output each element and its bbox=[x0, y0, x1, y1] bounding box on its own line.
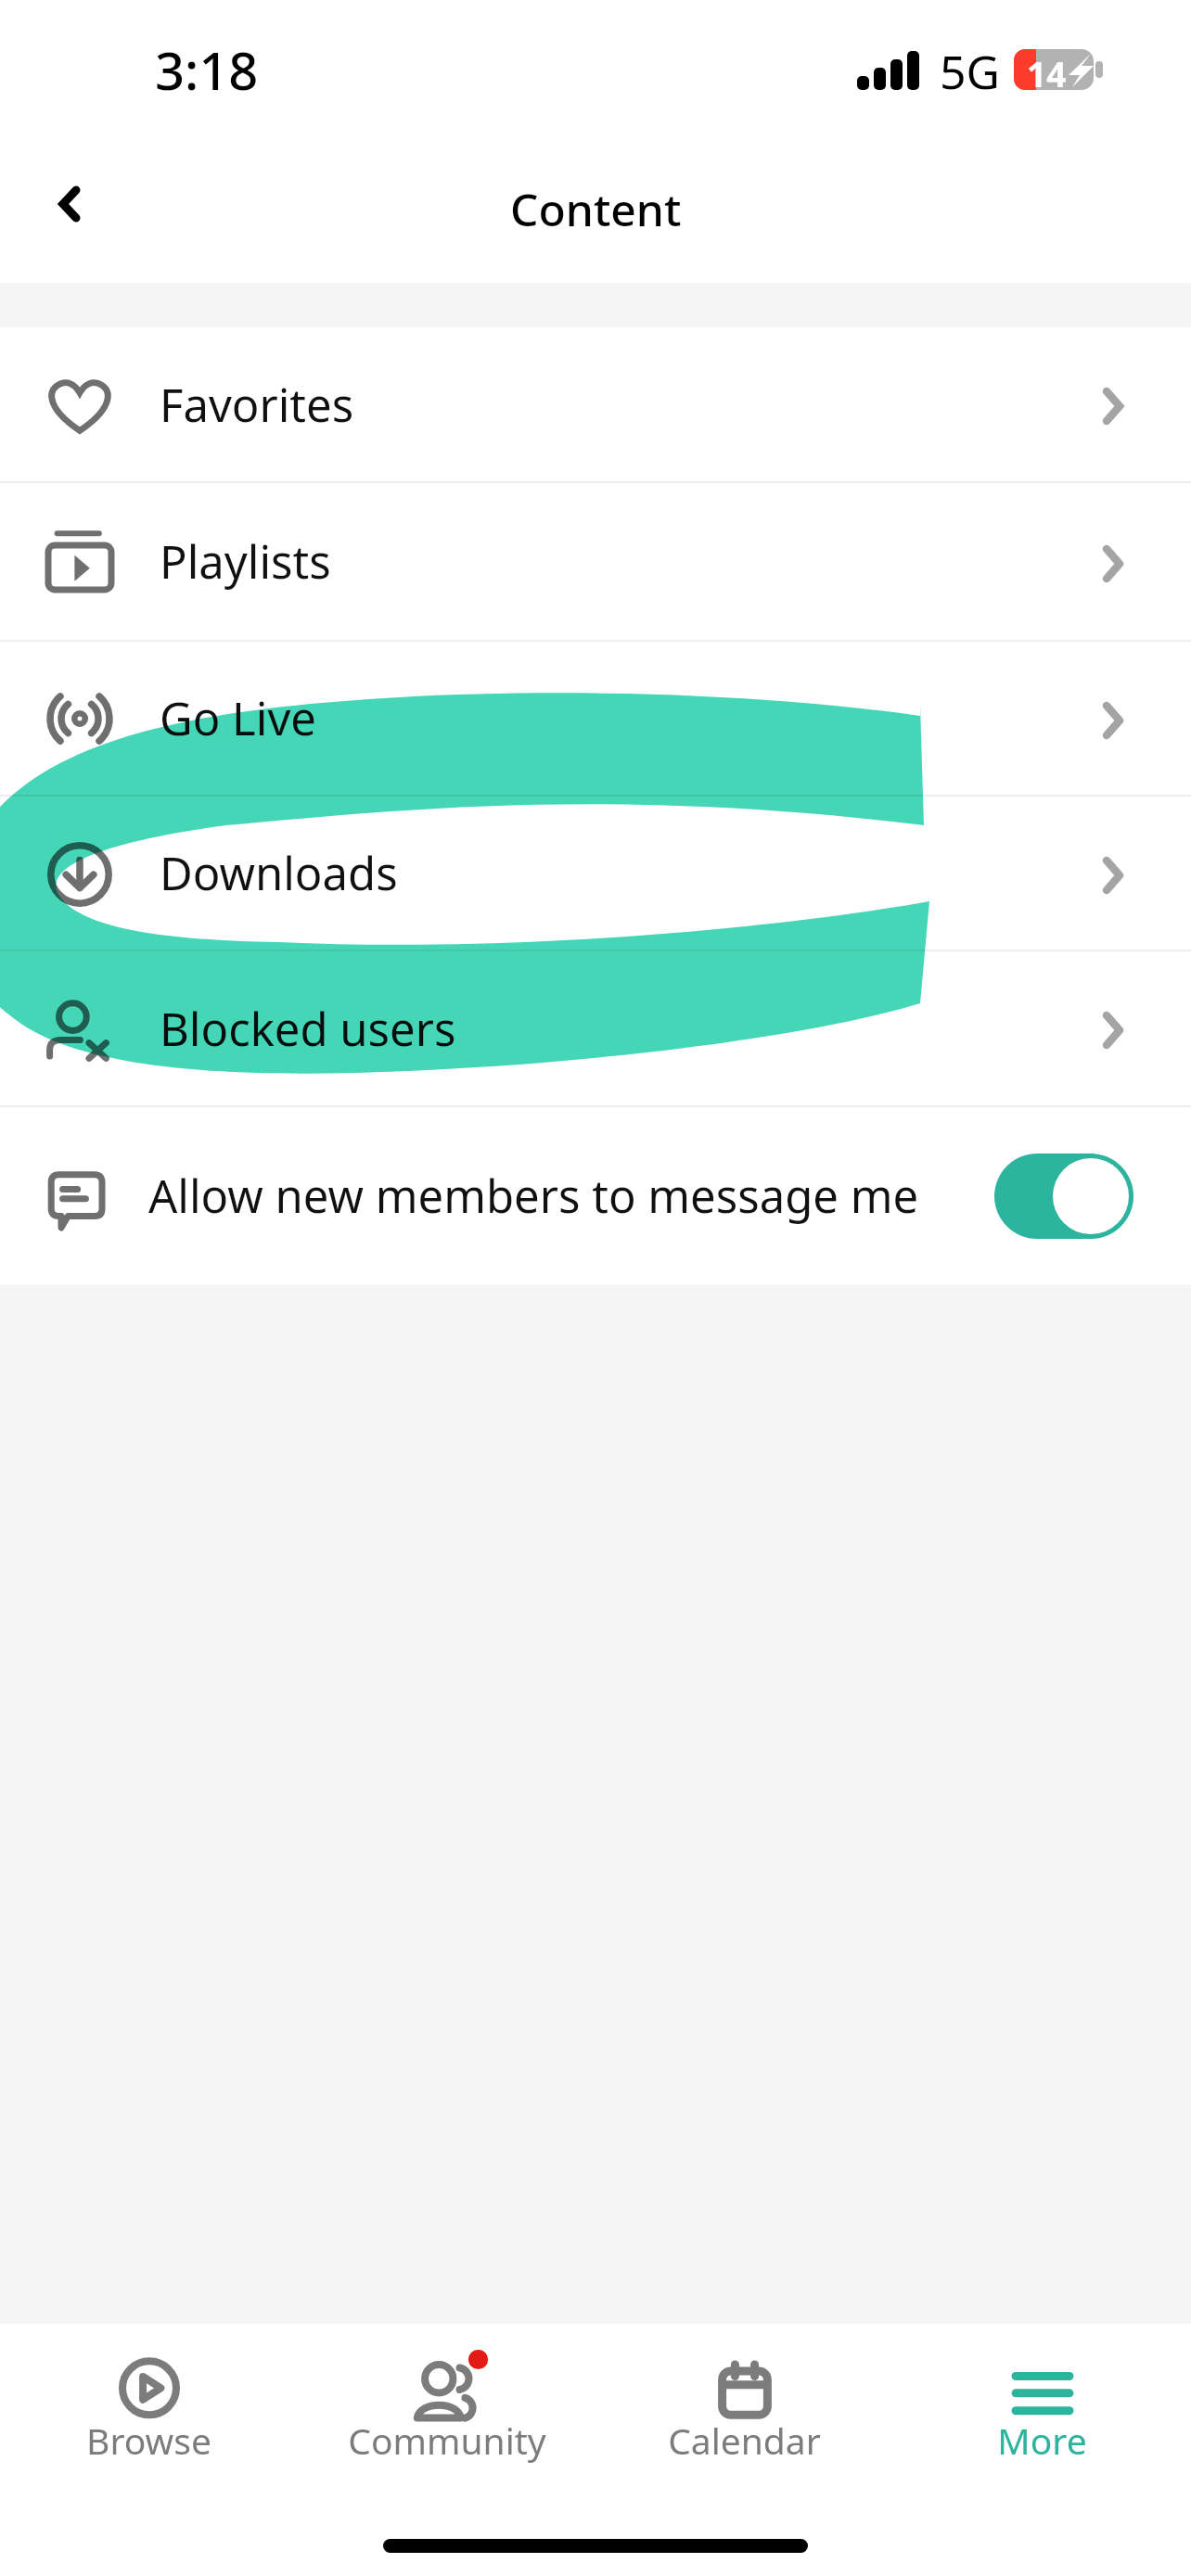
staticText: Downloads bbox=[160, 842, 398, 904]
button[interactable]: Back bbox=[14, 148, 125, 260]
button[interactable]: Allow new members to message me bbox=[0, 1107, 1191, 1284]
button[interactable]: More bbox=[893, 2324, 1191, 2509]
button[interactable]: Calendar bbox=[595, 2324, 893, 2509]
staticText: Community bbox=[348, 2416, 546, 2465]
staticText: Calendar bbox=[668, 2416, 821, 2465]
staticText: 3:18 bbox=[155, 34, 259, 105]
staticText: Favorites bbox=[160, 374, 354, 436]
staticText: Blocked users bbox=[160, 998, 456, 1060]
button[interactable]: Community bbox=[298, 2324, 595, 2509]
button[interactable]: Playlists bbox=[0, 483, 1191, 640]
staticText: Playlists bbox=[160, 530, 331, 593]
staticText: Browse bbox=[86, 2416, 211, 2465]
staticText: Go Live bbox=[160, 687, 316, 749]
button[interactable]: Favorites bbox=[0, 327, 1191, 481]
staticText: 5G bbox=[940, 40, 1000, 103]
button[interactable]: Downloads bbox=[0, 797, 1191, 950]
staticText: Allow new members to message me bbox=[148, 1165, 919, 1227]
staticText: More bbox=[997, 2416, 1087, 2465]
button[interactable]: Browse bbox=[0, 2324, 298, 2509]
button[interactable] bbox=[994, 1154, 1133, 1239]
staticText: Content bbox=[510, 179, 682, 239]
button[interactable]: Blocked users bbox=[0, 951, 1191, 1105]
staticText: 14 bbox=[1027, 50, 1067, 96]
button[interactable]: Go Live bbox=[0, 642, 1191, 795]
